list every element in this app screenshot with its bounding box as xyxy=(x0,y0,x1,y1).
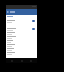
button[interactable] xyxy=(6,32,37,36)
button[interactable] xyxy=(6,44,37,48)
button[interactable] xyxy=(6,52,37,56)
button[interactable]: Home xyxy=(19,59,25,63)
button[interactable] xyxy=(6,36,37,40)
button[interactable]: Toggle setting xyxy=(32,28,35,30)
button[interactable]: Navigate up xyxy=(6,10,10,14)
button[interactable]: Toggle setting xyxy=(32,20,35,22)
button[interactable]: Back xyxy=(9,59,15,63)
button[interactable] xyxy=(6,48,37,52)
button[interactable] xyxy=(6,40,37,44)
button[interactable]: Toggle setting xyxy=(6,20,37,24)
button[interactable]: Recent apps xyxy=(28,59,34,63)
button[interactable]: Toggle setting xyxy=(6,28,37,32)
